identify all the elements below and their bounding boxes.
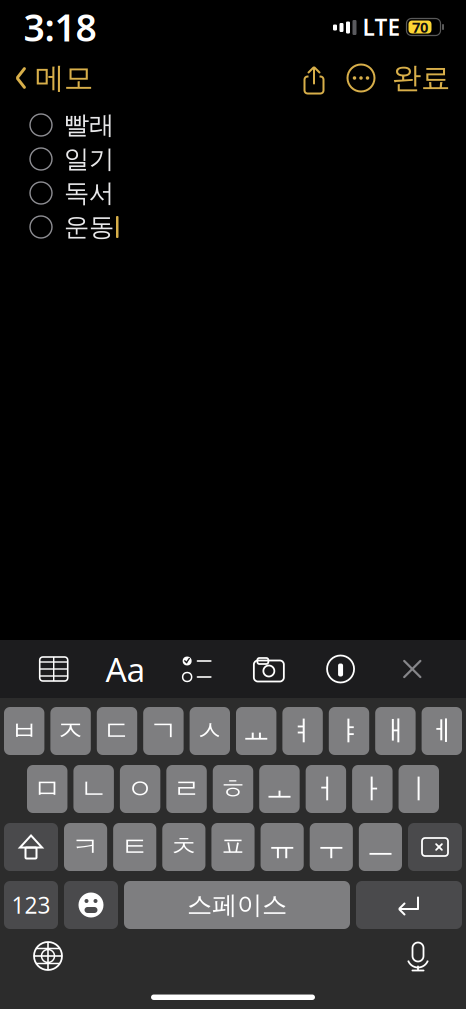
button[interactable]: 삭제 <box>408 823 462 871</box>
button[interactable]: ㄷ <box>97 707 137 755</box>
button[interactable]: ㄱ <box>143 707 184 755</box>
staticText: ㅣ <box>405 772 433 806</box>
button[interactable]: ㅓ <box>306 765 346 813</box>
staticText: ㅁ <box>33 772 61 806</box>
button[interactable]: 닫기 <box>384 647 440 691</box>
button[interactable]: 서식 <box>97 647 153 691</box>
button[interactable]: ㅔ <box>422 707 462 755</box>
button[interactable]: ㅋ <box>64 823 107 871</box>
button[interactable]: 스페이스 <box>124 881 350 929</box>
staticText: ㅗ <box>265 772 293 806</box>
button[interactable]: ㅗ <box>259 765 300 813</box>
staticText: ㄴ <box>80 772 108 806</box>
staticText: ㄹ <box>173 772 201 806</box>
staticText: ㅐ <box>381 714 409 748</box>
button[interactable]: ㄴ <box>73 765 114 813</box>
button[interactable]: ㅁ <box>27 765 67 813</box>
staticText: 메모 <box>35 60 93 96</box>
button[interactable]: 표 <box>26 647 82 691</box>
button[interactable]: 일기 <box>0 142 466 176</box>
button[interactable]: ㅊ <box>162 823 205 871</box>
button[interactable]: ㄹ <box>166 765 207 813</box>
staticText: ㅌ <box>121 830 149 864</box>
button[interactable]: 더 보기 <box>336 58 386 98</box>
staticText: 빨래 <box>64 109 114 140</box>
staticText: ㅂ <box>10 714 38 748</box>
staticText: 독서 <box>64 177 114 208</box>
button[interactable]: ㅠ <box>261 823 304 871</box>
button[interactable]: ㅐ <box>375 707 416 755</box>
staticText: ㅇ <box>126 772 154 806</box>
button[interactable]: ㅛ <box>236 707 276 755</box>
button[interactable]: ㅈ <box>50 707 91 755</box>
staticText: ㅜ <box>317 830 345 864</box>
button[interactable]: ㅍ <box>211 823 254 871</box>
staticText: ㅋ <box>72 830 100 864</box>
button[interactable]: ㅇ <box>120 765 160 813</box>
button[interactable]: 받아쓰기 <box>390 932 446 980</box>
staticText: 70 <box>412 17 428 37</box>
staticText: ㅅ <box>196 714 224 748</box>
button[interactable]: ㅅ <box>190 707 230 755</box>
button[interactable]: 다음 키보드 <box>20 932 76 980</box>
staticText: ㅈ <box>57 714 85 748</box>
button[interactable]: 시프트 <box>4 823 58 871</box>
staticText: ㅑ <box>335 714 363 748</box>
staticText: ㅛ <box>242 714 270 748</box>
button[interactable]: 줄바꿈 <box>356 881 462 929</box>
staticText: Aa <box>105 647 145 691</box>
button[interactable]: ㅑ <box>329 707 369 755</box>
button[interactable]: 마크업 <box>313 647 369 691</box>
staticText: 123 <box>11 890 50 920</box>
staticText: ㅏ <box>358 772 386 806</box>
button[interactable]: 123 <box>4 881 58 929</box>
button[interactable]: ㅏ <box>352 765 392 813</box>
staticText: ㅕ <box>289 714 317 748</box>
button[interactable]: 운동 <box>0 210 466 244</box>
staticText: LTE <box>362 12 400 42</box>
staticText: ㄱ <box>149 714 177 748</box>
staticText: ㄷ <box>103 714 131 748</box>
button[interactable]: 카메라 <box>241 647 297 691</box>
button[interactable]: ㅌ <box>113 823 156 871</box>
button[interactable]: 체크리스트 <box>169 647 225 691</box>
button[interactable]: 완료 <box>386 54 466 102</box>
button[interactable]: 메모 <box>0 54 93 102</box>
button[interactable]: ㅡ <box>359 823 402 871</box>
button[interactable]: 빨래 <box>0 108 466 142</box>
button[interactable]: ㅣ <box>399 765 439 813</box>
button[interactable]: ㅂ <box>4 707 44 755</box>
staticText: 운동 <box>64 211 114 242</box>
staticText: ㅍ <box>219 830 247 864</box>
staticText: 3:18 <box>23 2 96 52</box>
button[interactable]: 공유 <box>292 58 336 98</box>
staticText: 완료 <box>392 60 450 96</box>
staticText: 스페이스 <box>187 889 287 920</box>
staticText: ㅊ <box>170 830 198 864</box>
button[interactable]: 독서 <box>0 176 466 210</box>
staticText: 일기 <box>64 143 114 174</box>
staticText: ㅓ <box>312 772 340 806</box>
staticText: ㅎ <box>219 772 247 806</box>
staticText: ㅡ <box>366 830 394 864</box>
button[interactable]: ㅎ <box>213 765 253 813</box>
staticText: ㅔ <box>428 714 456 748</box>
staticText: ㅠ <box>268 830 296 864</box>
button[interactable]: ㅕ <box>282 707 323 755</box>
button[interactable]: ㅜ <box>310 823 353 871</box>
button[interactable]: 이모티콘 <box>64 881 118 929</box>
